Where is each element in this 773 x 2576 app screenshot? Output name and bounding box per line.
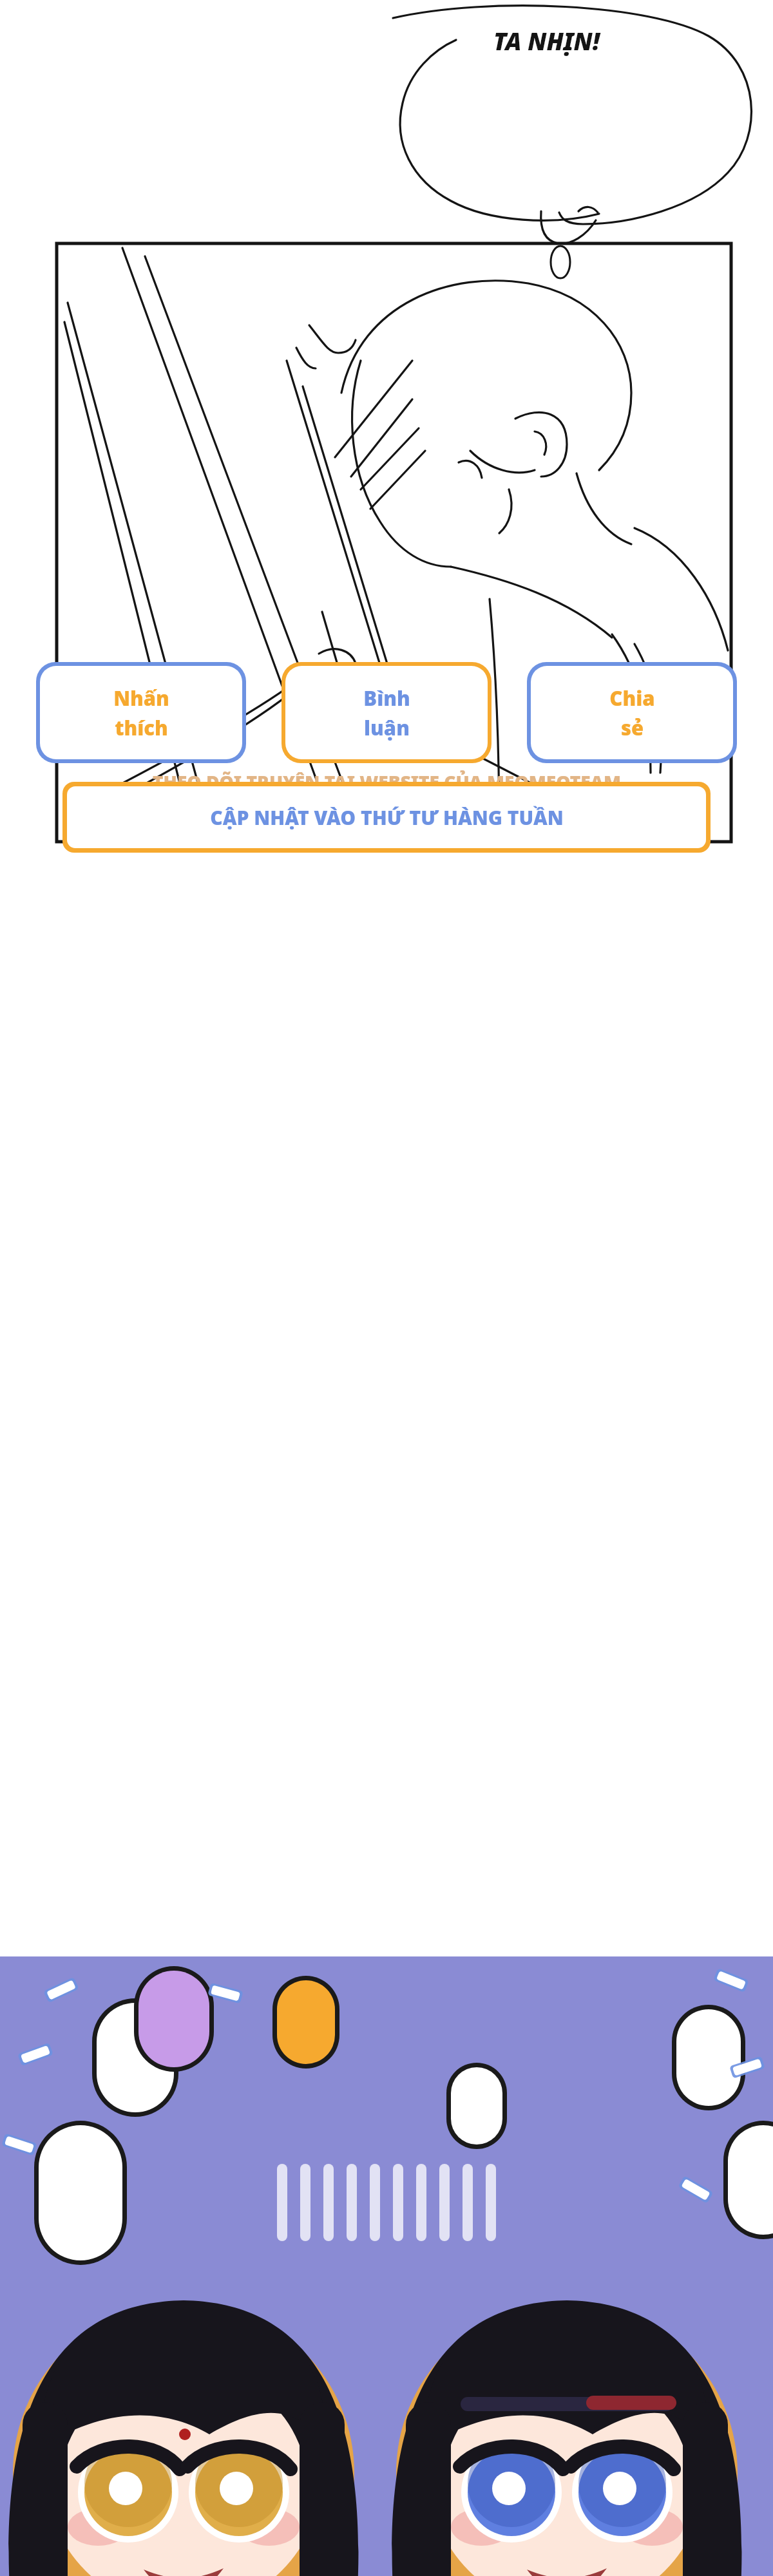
button[interactable]: TA NHỊN!	[493, 24, 600, 57]
staticText: Bình luận	[363, 685, 410, 741]
staticText: Nhấn thích	[113, 685, 169, 741]
staticText: CẬP NHẬT VÀO THỨ TƯ HÀNG TUẦN	[210, 804, 564, 831]
button[interactable]: Chia sẻ	[531, 666, 733, 759]
staticText: TA NHỊN!	[493, 24, 600, 57]
button[interactable]: Nhấn thích	[40, 666, 242, 759]
staticText: Chia sẻ	[609, 685, 655, 741]
button[interactable]: CẬP NHẬT VÀO THỨ TƯ HÀNG TUẦN	[67, 786, 706, 848]
button[interactable]: Bình luận	[285, 666, 488, 759]
staticText: THEO DÕI TRUYỆN TẠI WEBSITE CỦA MEOMEOTE…	[153, 770, 621, 794]
